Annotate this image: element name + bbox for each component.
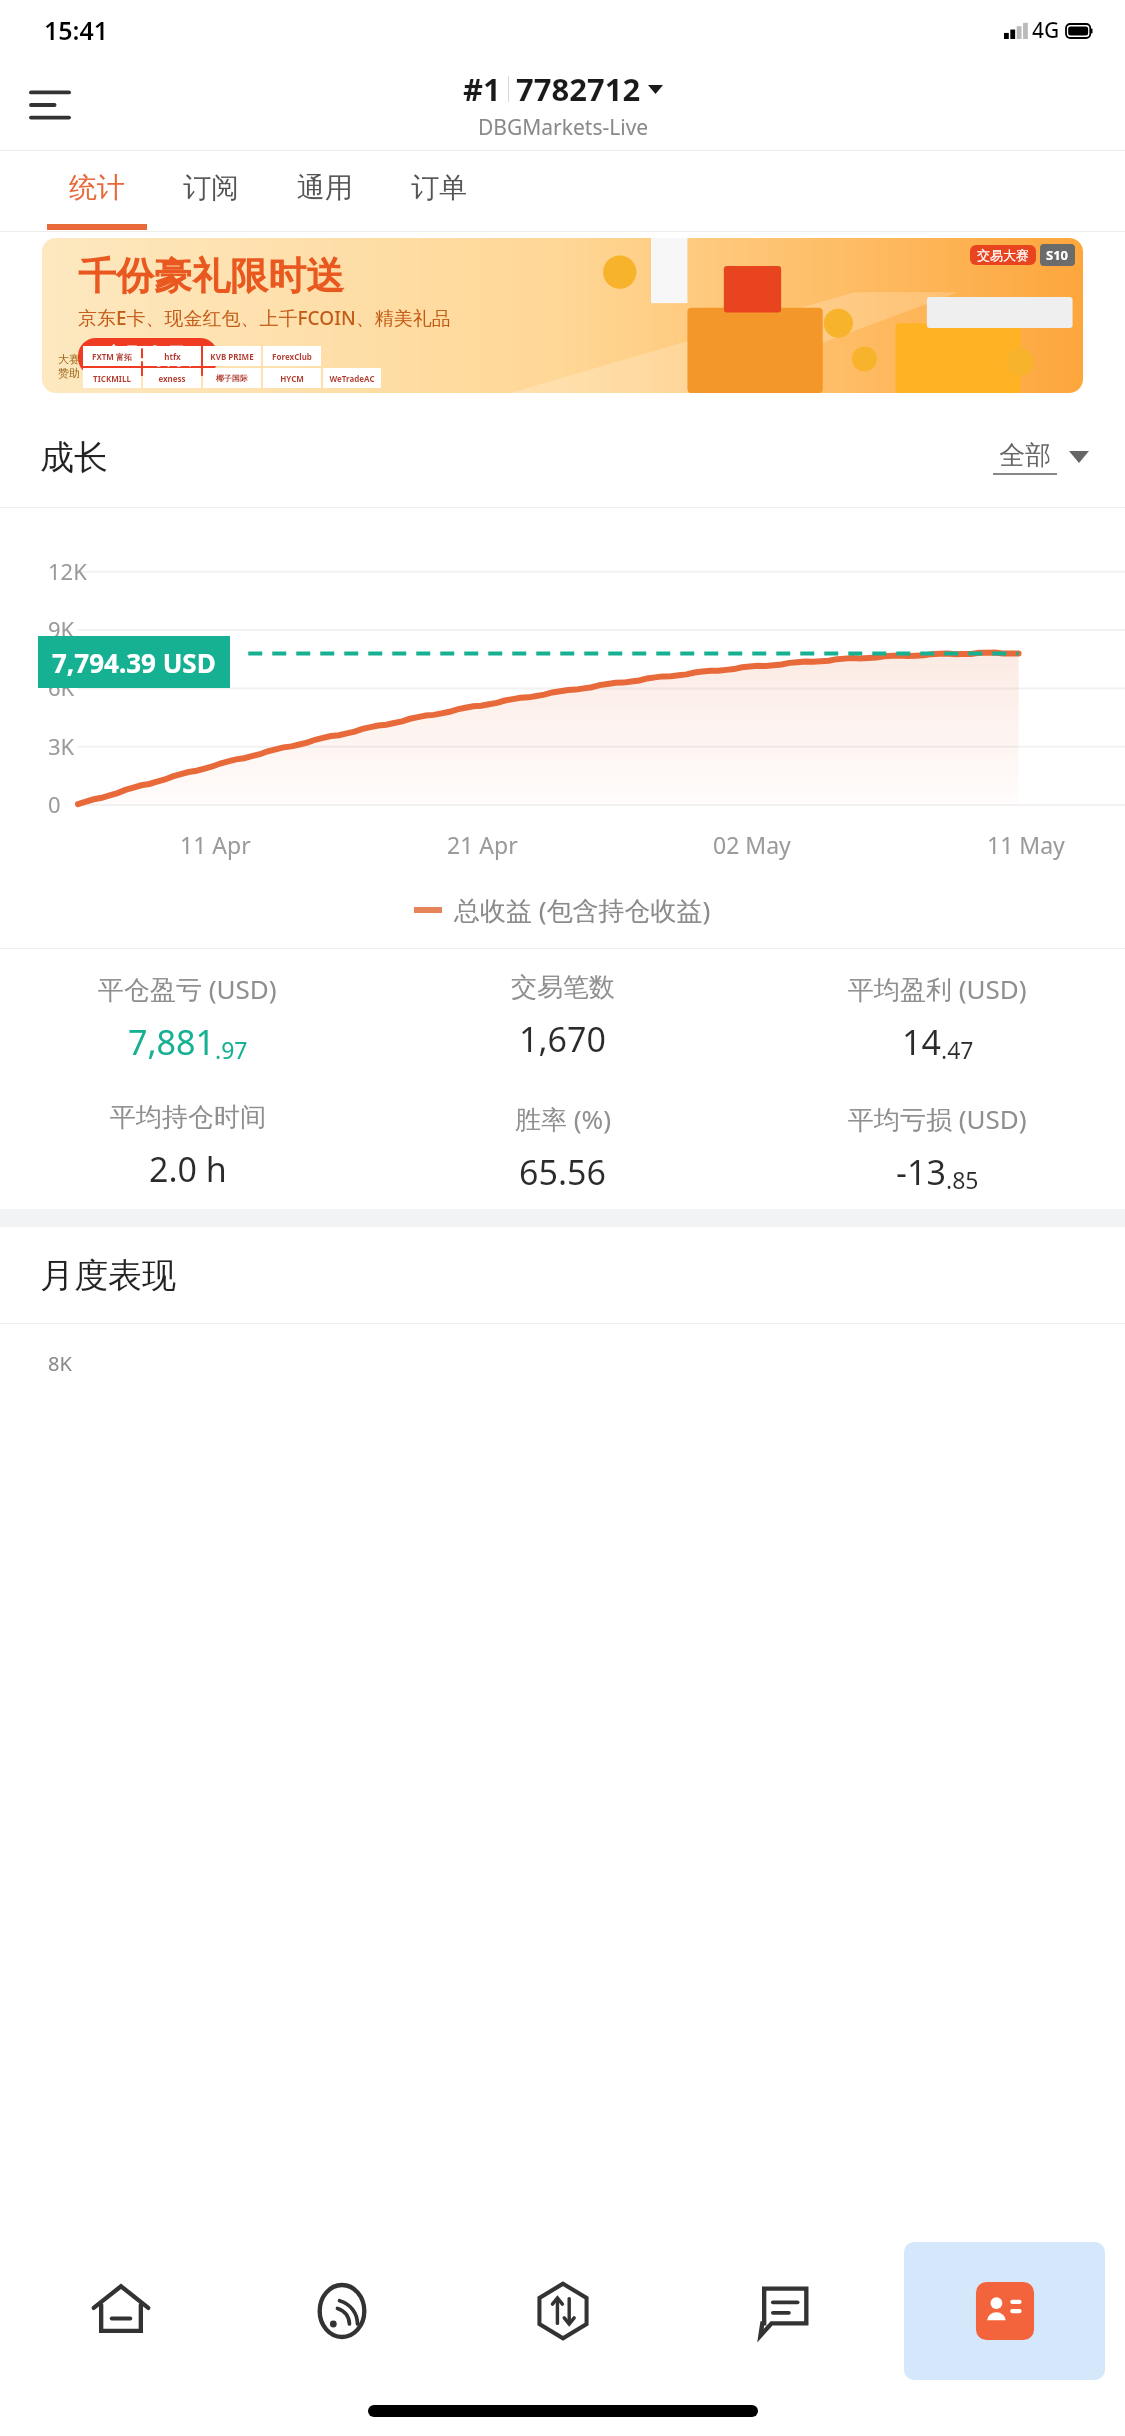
button[interactable]: Menu bbox=[22, 77, 78, 133]
staticText: .47 bbox=[941, 1034, 974, 1065]
staticText: TICKMILL bbox=[93, 373, 131, 384]
button[interactable]: 通用 bbox=[268, 151, 382, 224]
staticText: KVB PRIME bbox=[210, 351, 254, 362]
staticText: 7,881 bbox=[128, 1019, 215, 1065]
staticText: 椰子国际 bbox=[216, 373, 248, 383]
staticText: 9K bbox=[48, 614, 75, 644]
staticText: 02 May bbox=[713, 829, 791, 860]
staticText: 统计 bbox=[69, 170, 125, 205]
staticText: 月度表现 bbox=[40, 1254, 176, 1297]
staticText: 0 bbox=[48, 789, 61, 819]
staticText: 14 bbox=[902, 1019, 941, 1065]
button[interactable]: 订单 bbox=[382, 151, 496, 224]
staticText: 平均亏损 (USD) bbox=[848, 1101, 1027, 1137]
staticText: 成长 bbox=[40, 436, 108, 479]
button[interactable]: Messages bbox=[673, 2236, 894, 2386]
staticText: 总收益 (包含持仓收益) bbox=[454, 892, 711, 928]
staticText: 胜率 (%) bbox=[515, 1101, 611, 1137]
staticText: S10 bbox=[1046, 246, 1069, 264]
staticText: 京东E卡、现金红包、上千FCOIN、精美礼品 bbox=[78, 305, 451, 331]
staticText: 平均持仓时间 bbox=[110, 1101, 266, 1134]
staticText: 平仓盈亏 (USD) bbox=[98, 971, 277, 1007]
staticText: HYCM bbox=[280, 373, 304, 384]
staticText: WeTradeAC bbox=[329, 373, 375, 384]
staticText: 订单 bbox=[411, 170, 467, 205]
button[interactable]: 全部 bbox=[993, 439, 1089, 475]
staticText: 3K bbox=[48, 731, 75, 761]
staticText: .97 bbox=[215, 1034, 248, 1065]
staticText: 赞助 bbox=[58, 366, 80, 380]
staticText: 1,670 bbox=[519, 1016, 606, 1062]
staticText: #1 bbox=[463, 68, 501, 110]
staticText: 通用 bbox=[297, 170, 353, 205]
staticText: 7,794.39 USD bbox=[52, 645, 216, 680]
button[interactable]: Profile bbox=[904, 2242, 1105, 2380]
staticText: 大赛 bbox=[58, 352, 80, 366]
button[interactable]: 立即领取 bbox=[104, 343, 192, 371]
staticText: htfx bbox=[164, 351, 181, 362]
button[interactable]: #1 bbox=[463, 68, 663, 142]
staticText: FXTM 富拓 bbox=[92, 351, 132, 362]
staticText: 7782712 bbox=[516, 68, 641, 110]
staticText: 全部 bbox=[999, 439, 1051, 472]
staticText: 8K bbox=[48, 1350, 72, 1377]
staticText: .85 bbox=[946, 1164, 979, 1195]
staticText: 12K bbox=[48, 556, 87, 586]
staticText: 11 May bbox=[987, 829, 1065, 860]
staticText: DBGMarkets-Live bbox=[478, 113, 649, 142]
button[interactable]: Trade bbox=[452, 2236, 673, 2386]
staticText: 平均盈利 (USD) bbox=[848, 971, 1027, 1007]
staticText: 交易大赛 bbox=[977, 247, 1029, 263]
staticText: 千份豪礼限时送 bbox=[78, 252, 344, 300]
staticText: 4G bbox=[1032, 16, 1060, 45]
staticText: 15:41 bbox=[44, 13, 109, 47]
staticText: -13 bbox=[896, 1149, 946, 1195]
staticText: 65.56 bbox=[519, 1149, 606, 1195]
staticText: 立即领取 bbox=[104, 343, 192, 371]
staticText: 2.0 h bbox=[149, 1146, 227, 1192]
button[interactable]: Signals bbox=[231, 2236, 452, 2386]
button[interactable]: 交易大赛 bbox=[42, 238, 1083, 393]
staticText: 11 Apr bbox=[180, 829, 251, 860]
staticText: 6K bbox=[48, 672, 75, 702]
staticText: 订阅 bbox=[183, 170, 239, 205]
staticText: 21 Apr bbox=[447, 829, 518, 860]
button[interactable]: 订阅 bbox=[154, 151, 268, 224]
staticText: ForexClub bbox=[272, 351, 312, 362]
staticText: exness bbox=[158, 373, 186, 384]
staticText: 交易笔数 bbox=[511, 971, 615, 1004]
button[interactable]: Home bbox=[10, 2236, 231, 2386]
button[interactable]: 统计 bbox=[40, 151, 154, 224]
